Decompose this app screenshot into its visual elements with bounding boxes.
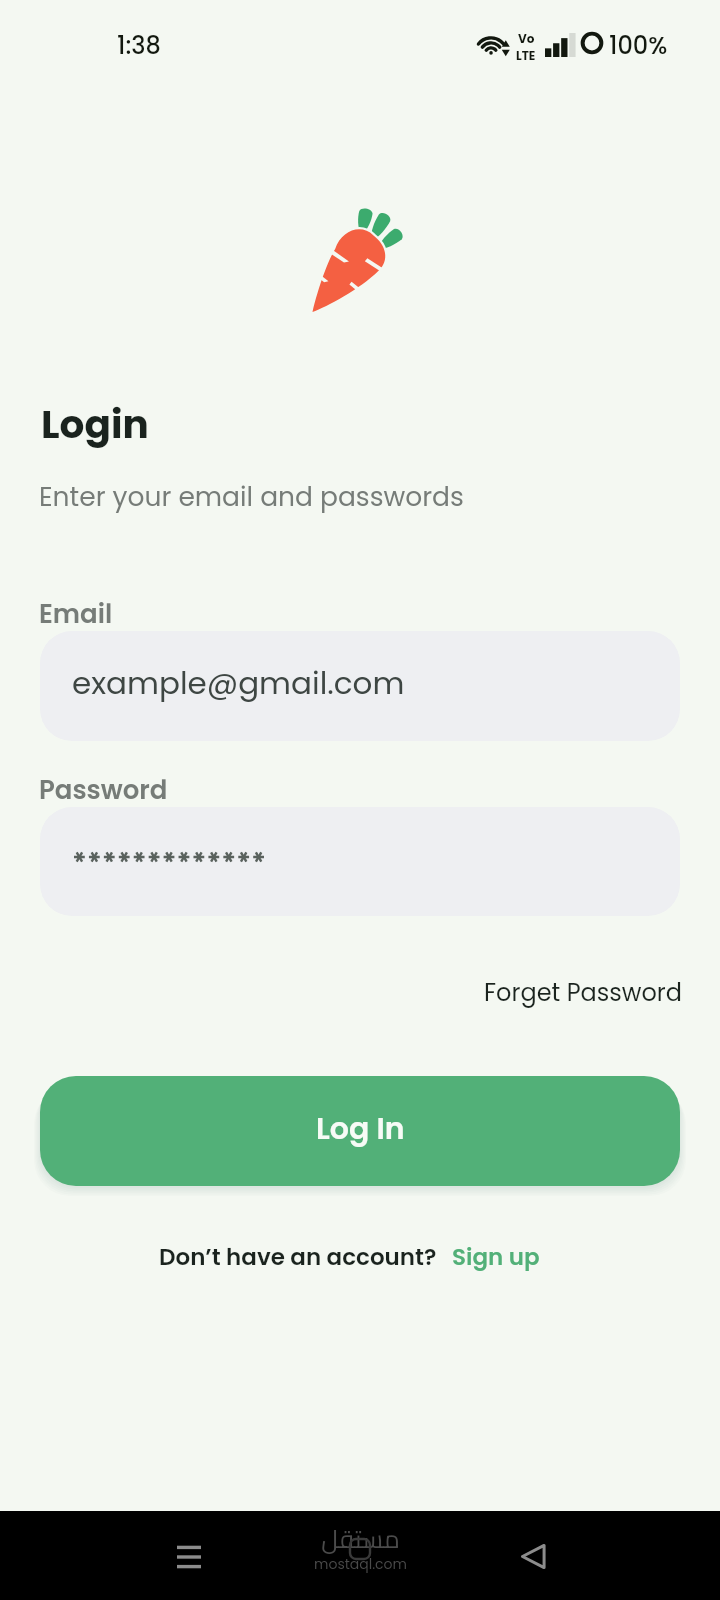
button[interactable] xyxy=(40,807,680,916)
staticText: Email xyxy=(39,596,113,632)
button[interactable]: Log In xyxy=(40,1076,680,1186)
staticText: example@gmail.com xyxy=(72,661,405,704)
staticText: 100% xyxy=(609,29,668,63)
staticText: Enter your email and passwords xyxy=(39,478,464,515)
staticText: Forget Password xyxy=(484,976,683,1010)
button[interactable]: Forget Password xyxy=(484,976,683,1010)
staticText: Login xyxy=(41,397,149,452)
staticText: mostaql.com xyxy=(314,1554,407,1574)
staticText: Sign up xyxy=(452,1241,540,1273)
staticText: LTE xyxy=(516,47,536,64)
button[interactable]: Back xyxy=(501,1528,565,1584)
staticText: Log In xyxy=(316,1108,405,1150)
staticText: Password xyxy=(39,772,168,808)
staticText: Don’t have an account? xyxy=(159,1241,437,1273)
staticText: مستقل xyxy=(321,1515,400,1562)
button[interactable]: Sign up xyxy=(452,1241,540,1273)
button[interactable]: Recent apps xyxy=(157,1529,221,1585)
button[interactable]: example@gmail.com xyxy=(40,631,680,741)
staticText: 1:38 xyxy=(117,29,161,63)
staticText: Vo xyxy=(518,30,535,47)
